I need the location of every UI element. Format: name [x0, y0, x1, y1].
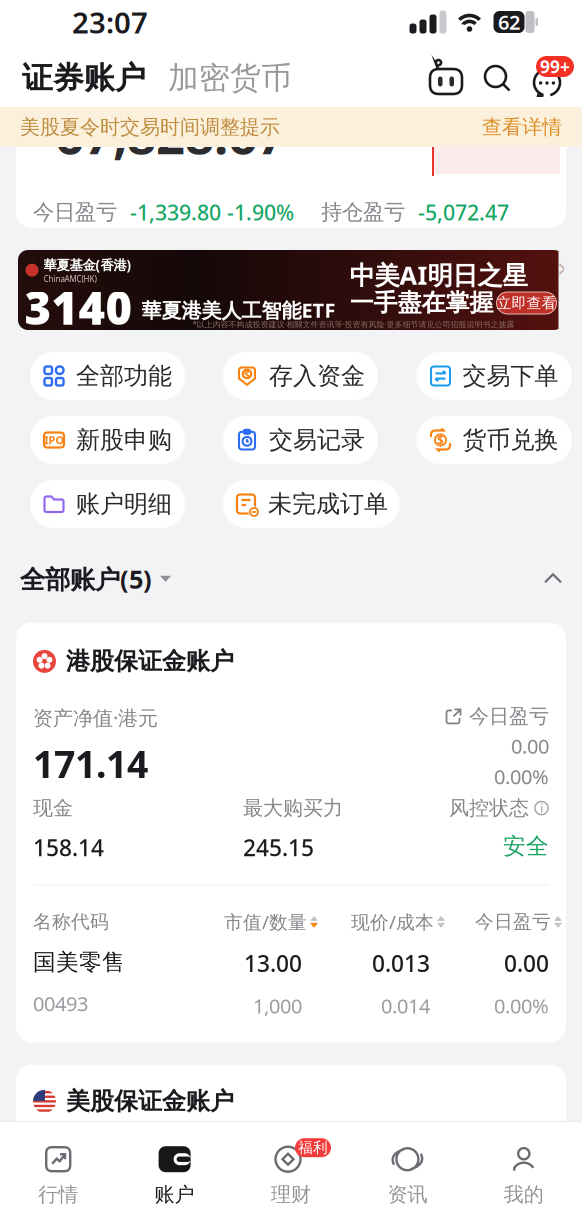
button[interactable]: 華夏基金(香港): [18, 250, 564, 330]
staticText: 中美AI明日之星: [349, 258, 527, 292]
staticText: 62: [498, 9, 520, 35]
staticText: 国美零售: [33, 948, 125, 976]
button[interactable]: 资讯: [349, 1144, 466, 1207]
staticText: 0.013: [372, 948, 430, 978]
staticText: 加密货币: [168, 59, 292, 97]
staticText: 交易记录: [269, 425, 365, 455]
staticText: 行情: [38, 1182, 78, 1207]
button[interactable]: 行情: [0, 1144, 116, 1207]
button[interactable]: 收起: [544, 570, 562, 588]
staticText: 13.00: [244, 948, 302, 978]
button[interactable]: 全部账户(5): [20, 562, 171, 596]
staticText: 存入资金: [269, 361, 365, 391]
button[interactable]: 交易下单: [416, 352, 572, 400]
button[interactable]: 账户明细: [30, 480, 185, 528]
button[interactable]: 福利: [233, 1144, 349, 1207]
button[interactable]: $: [223, 352, 378, 400]
button[interactable]: 美股夏令时交易时间调整提示: [0, 107, 582, 147]
button[interactable]: 未完成订单: [223, 480, 400, 528]
button[interactable]: 加密货币: [146, 59, 292, 97]
staticText: $: [244, 367, 250, 381]
staticText: 全部功能: [76, 361, 172, 391]
button[interactable]: 全部功能: [30, 352, 185, 400]
staticText: 67,828.67: [55, 101, 286, 168]
staticText: 0.00%: [494, 763, 549, 790]
staticText: 港股保证金账户: [66, 647, 234, 676]
staticText: 171.14: [33, 739, 148, 788]
staticText: 资讯: [387, 1182, 427, 1207]
staticText: 账户: [155, 1182, 195, 1207]
staticText: 福利: [298, 1139, 328, 1157]
staticText: 245.15: [243, 832, 314, 862]
staticText: 资产净值·港元: [33, 704, 158, 731]
staticText: 1,000: [253, 992, 302, 1019]
staticText: 0.00%: [494, 992, 549, 1019]
staticText: 0.00: [511, 733, 549, 759]
staticText: 查看详情: [482, 115, 562, 139]
staticText: 美股保证金账户: [66, 1087, 234, 1116]
staticText: 華夏港美人工智能ETF: [141, 297, 335, 323]
staticText: 安全: [503, 832, 549, 860]
staticText: 现金: [33, 796, 73, 820]
button[interactable]: 账户: [116, 1144, 233, 1207]
staticText: 華夏基金(香港): [43, 256, 131, 274]
button[interactable]: 国美零售: [33, 934, 549, 1019]
staticText: -1,339.80 -1.90%: [130, 198, 294, 226]
staticText: -5,072.47: [418, 198, 509, 226]
button[interactable]: 我的: [466, 1144, 582, 1207]
button[interactable]: 立即查看: [496, 292, 556, 314]
staticText: 未完成订单: [268, 489, 388, 519]
button[interactable]: 消息: [512, 56, 564, 100]
staticText: 0.00: [504, 948, 549, 978]
staticText: 今日盈亏: [475, 910, 551, 933]
staticText: 00493: [33, 990, 88, 1017]
staticText: 一手盡在掌握: [349, 288, 493, 317]
button[interactable]: 今日盈亏: [444, 704, 549, 729]
staticText: ChinaAMC(HK): [43, 274, 96, 284]
staticText: 3140: [24, 277, 132, 337]
staticText: i: [540, 799, 543, 817]
button[interactable]: 港股保证金账户: [33, 647, 549, 676]
button[interactable]: 关闭广告: [12, 250, 569, 274]
staticText: 理财: [271, 1182, 311, 1207]
staticText: 158.14: [33, 832, 104, 862]
button[interactable]: 搜索: [465, 63, 512, 93]
staticText: 99+: [540, 55, 570, 78]
button[interactable]: $: [416, 416, 572, 464]
staticText: 证券账户: [22, 59, 146, 97]
staticText: 持仓盈亏: [321, 199, 405, 225]
staticText: 今日盈亏: [33, 199, 117, 225]
button[interactable]: IPO: [30, 416, 185, 464]
staticText: 最大购买力: [243, 796, 343, 820]
staticText: 立即查看: [496, 294, 556, 312]
staticText: 风控状态: [449, 796, 529, 820]
staticText: 现价/成本: [351, 909, 434, 934]
staticText: 今日盈亏: [469, 704, 549, 729]
staticText: 新股申购: [76, 425, 172, 455]
staticText: 名称代码: [33, 910, 109, 933]
staticText: 全部账户(5): [20, 562, 152, 596]
button[interactable]: AI 助手: [427, 59, 465, 97]
staticText: 货币兑换: [462, 425, 558, 455]
button[interactable]: 交易记录: [223, 416, 378, 464]
staticText: *以上内容不构成投资建议·相關文件资讯等·投资有风险·更多细节请见公司招股说明书…: [192, 319, 514, 330]
button[interactable]: 美股保证金账户: [33, 1087, 566, 1116]
staticText: 市值/数量: [224, 909, 307, 934]
button[interactable]: 证券账户: [22, 59, 146, 97]
staticText: 我的: [504, 1182, 544, 1207]
staticText: 美股夏令时交易时间调整提示: [20, 115, 280, 139]
staticText: IPO: [44, 433, 63, 447]
staticText: $: [437, 432, 444, 448]
staticText: 交易下单: [462, 361, 558, 391]
staticText: 账户明细: [76, 489, 172, 519]
staticText: 0.014: [381, 992, 430, 1019]
staticText: 23:07: [72, 2, 148, 41]
